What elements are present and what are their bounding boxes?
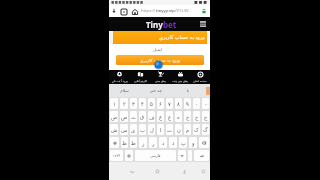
staticText: ش [111,127,118,133]
button[interactable]: ن [175,124,182,135]
button[interactable]: ۴ [139,98,146,109]
staticText: چه خبر [140,88,172,94]
staticText: ۳ [132,101,135,107]
staticText: ورود به حساب کاربری [140,57,181,63]
button[interactable]: Hide keyboard [128,167,137,176]
button[interactable]: ظ [121,137,128,148]
staticText: فارسی [150,154,161,158]
button[interactable]: ق [139,111,146,122]
button[interactable]: ک [193,124,200,135]
button[interactable]: Back [180,167,189,176]
staticText: /V1L3V.. [175,8,191,14]
button[interactable]: ت [166,124,173,135]
button[interactable]: و [189,137,197,148]
button[interactable]: ۲ [120,98,128,109]
staticText: ۴ [141,101,144,107]
staticText: tinyyy.vip [156,8,175,14]
button[interactable]: - [202,98,209,109]
staticText: ۶ [159,101,162,107]
button[interactable]: خ [184,111,191,122]
staticText: ط [131,140,136,146]
button[interactable]: م [184,124,191,135]
button[interactable]: ر [149,137,157,148]
button[interactable]: Tabs [119,7,128,16]
button[interactable]: ۰ [193,98,200,109]
button[interactable]: ۳ [130,98,137,109]
staticText: - [205,100,207,107]
button[interactable]: س [120,124,128,135]
button[interactable]: Menu [199,20,207,28]
button[interactable]: ل [148,124,155,135]
button[interactable]: Enter [194,150,209,161]
staticText: پیش بینی زنده [172,79,188,83]
staticText: ک [194,127,199,133]
button[interactable]: Downloads [110,7,118,15]
button[interactable]: ط [130,137,137,148]
button[interactable]: Shift [110,137,119,148]
staticText: کازینو آنلاین [134,79,147,83]
staticText: ق [140,114,145,120]
button[interactable]: Voice input [178,150,186,161]
staticText: ۹ [186,101,189,107]
button[interactable]: ش [110,124,118,135]
staticText: https:// [141,8,156,14]
button[interactable]: ورود به حساب کاربری [116,55,204,65]
staticText: ؟۱۲۳ [113,154,121,158]
staticText: ل [150,127,154,133]
staticText: ظ [122,140,127,146]
button[interactable]: ؟۱۲۳ [110,150,123,161]
button[interactable]: ص [120,111,128,122]
button[interactable]: ا [157,124,164,135]
staticText: ا [160,127,162,133]
button[interactable]: ۵ [148,98,155,109]
staticText: ۵ [150,101,153,107]
staticText: و [192,140,195,146]
staticText: گ [203,127,208,133]
staticText: سلام [109,88,140,93]
button[interactable]: ز [139,137,147,148]
button[interactable]: ع [166,111,173,122]
button[interactable]: صفحه اصلی [190,70,210,84]
button[interactable]: پ [179,137,187,148]
button[interactable]: ث [130,111,137,122]
staticText: م [186,127,190,133]
button[interactable]: ذ [159,137,167,148]
staticText: ث [131,114,136,120]
button[interactable]: ض [110,111,118,122]
staticText: ۱ [113,101,116,107]
staticText: ض [111,114,118,120]
button[interactable]: ح [193,111,200,122]
button[interactable]: ه [175,111,182,122]
button[interactable]: Recents [199,167,208,176]
button[interactable]: ۹ [184,98,191,109]
button[interactable]: فارسی [135,150,176,161]
button[interactable]: کازینو آنلاین [130,70,150,84]
button[interactable]: ف [148,111,155,122]
button[interactable]: پیش بینی زنده [170,70,190,84]
button[interactable]: . [188,150,192,161]
staticText: ۰ [195,101,198,107]
staticText: صفحه اصلی [193,79,207,83]
button[interactable]: ی [130,124,137,135]
staticText: غ [159,114,163,120]
staticText: ع [168,114,172,120]
button[interactable]: ۶ [157,98,164,109]
button[interactable]: ۷ [166,98,173,109]
button[interactable]: Backspace [199,137,209,148]
button[interactable]: ۸ [175,98,182,109]
button[interactable]: Home [153,167,162,176]
button[interactable]: Home [130,7,139,16]
button[interactable]: ب [139,124,146,135]
button[interactable]: ج [202,111,209,122]
button[interactable]: د [169,137,177,148]
button[interactable]: ۱ [110,98,118,109]
button[interactable]: غ [157,111,164,122]
staticText: ذ [162,140,165,146]
button[interactable]: پیش بینی [150,70,170,84]
staticText: ۲ [123,101,126,107]
button[interactable]: ورود / ثبت نام [109,70,130,84]
button[interactable]: گ [202,124,209,135]
staticText: bet [163,19,177,30]
button[interactable]: Emoji [125,150,133,161]
staticText: با [172,88,204,93]
